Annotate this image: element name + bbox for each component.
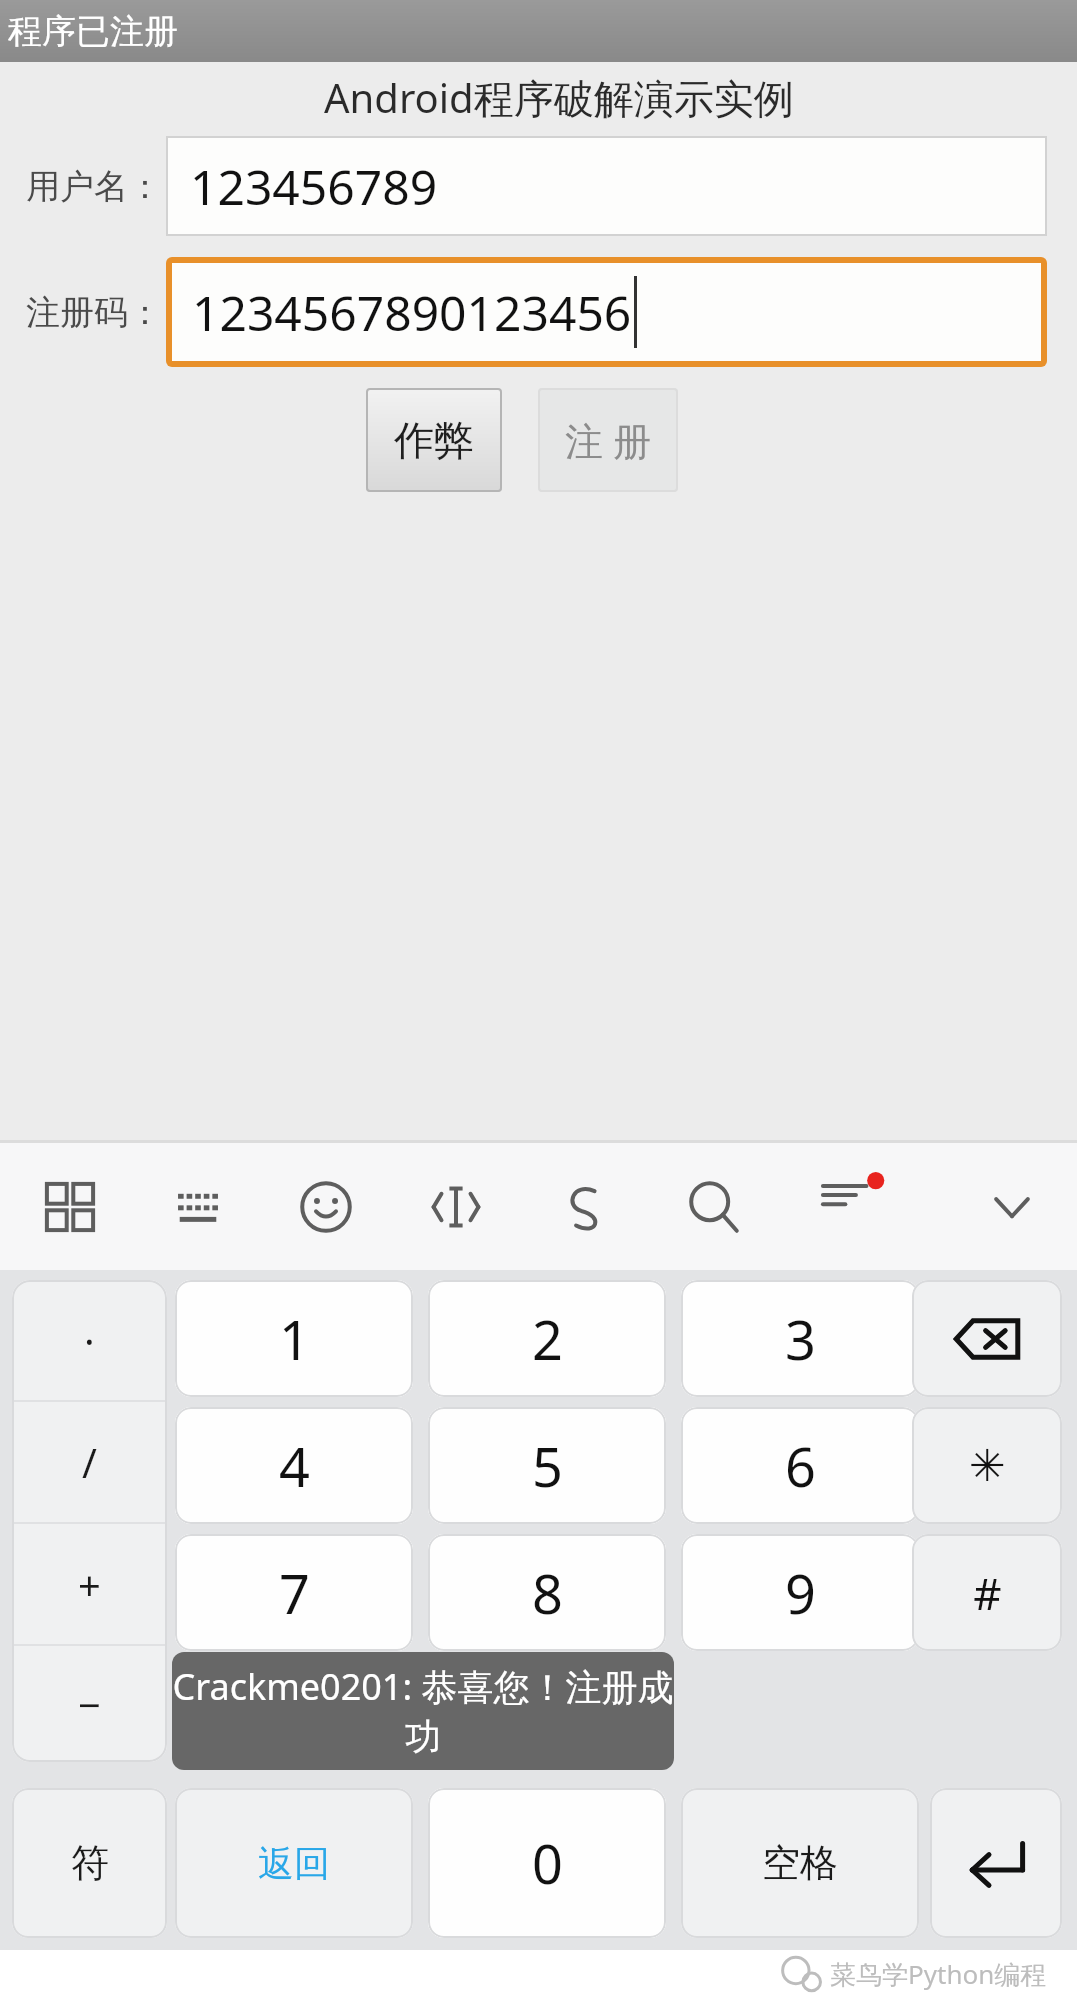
staticText: 注册码：: [26, 291, 162, 334]
staticText: 程序已注册: [8, 10, 178, 53]
staticText: 用户名：: [26, 165, 162, 208]
button[interactable]: 6: [681, 1407, 919, 1524]
button[interactable]: #: [912, 1534, 1062, 1651]
button[interactable]: 5: [428, 1407, 666, 1524]
button[interactable]: +: [12, 1524, 167, 1644]
button[interactable]: Keyboard: [150, 1159, 246, 1255]
staticText: ✳: [969, 1440, 1006, 1491]
button[interactable]: ✳: [912, 1407, 1062, 1524]
button[interactable]: Emoji: [278, 1159, 374, 1255]
staticText: 4: [279, 1429, 310, 1503]
button[interactable]: Text edit: [408, 1159, 504, 1255]
button[interactable]: /: [12, 1402, 167, 1522]
button[interactable]: 9: [681, 1534, 919, 1651]
staticText: 菜鸟学Python编程: [830, 1956, 1047, 1992]
button[interactable]: Backspace: [912, 1280, 1062, 1397]
button[interactable]: Clipboard: [536, 1159, 632, 1255]
button[interactable]: 123456789: [166, 136, 1047, 236]
button[interactable]: 0: [428, 1788, 666, 1938]
button[interactable]: Hide keyboard: [964, 1159, 1060, 1255]
staticText: 作弊: [394, 415, 474, 465]
staticText: 2: [532, 1302, 563, 1376]
button[interactable]: Enter: [930, 1788, 1062, 1938]
staticText: ·: [84, 1313, 95, 1367]
button[interactable]: 4: [175, 1407, 413, 1524]
staticText: 3: [785, 1302, 816, 1376]
staticText: /: [82, 1435, 97, 1489]
staticText: 0: [532, 1826, 563, 1900]
staticText: 返回: [258, 1841, 330, 1886]
button[interactable]: 符: [12, 1788, 167, 1938]
button[interactable]: Search: [665, 1159, 761, 1255]
button[interactable]: Network 4G: [800, 1159, 896, 1255]
button[interactable]: 8: [428, 1534, 666, 1651]
button[interactable]: 3: [681, 1280, 919, 1397]
staticText: Android程序破解演示实例: [324, 70, 794, 125]
staticText: 1234567890123456: [192, 280, 632, 345]
staticText: 9: [785, 1556, 816, 1630]
staticText: 8: [532, 1556, 563, 1630]
button[interactable]: Apps: [22, 1159, 118, 1255]
button[interactable]: 空格: [681, 1788, 919, 1938]
staticText: 123456789: [190, 154, 438, 219]
staticText: #: [973, 1563, 1002, 1623]
button[interactable]: 2: [428, 1280, 666, 1397]
staticText: −: [78, 1677, 101, 1731]
staticText: 6: [785, 1429, 816, 1503]
staticText: 1: [279, 1302, 310, 1376]
staticText: 7: [279, 1556, 310, 1630]
button[interactable]: ·: [12, 1280, 167, 1400]
staticText: 符: [71, 1839, 109, 1887]
button[interactable]: 作弊: [366, 388, 502, 492]
staticText: 空格: [762, 1839, 838, 1887]
button[interactable]: 1: [175, 1280, 413, 1397]
staticText: 5: [532, 1429, 563, 1503]
button[interactable]: −: [12, 1646, 167, 1762]
button[interactable]: 返回: [175, 1788, 413, 1938]
staticText: Crackme0201: 恭喜您！注册成功: [172, 1662, 674, 1760]
staticText: 注 册: [565, 414, 651, 466]
button[interactable]: 7: [175, 1534, 413, 1651]
staticText: +: [78, 1557, 101, 1611]
button[interactable]: 1234567890123456: [172, 263, 1041, 361]
button[interactable]: 注 册: [538, 388, 678, 492]
